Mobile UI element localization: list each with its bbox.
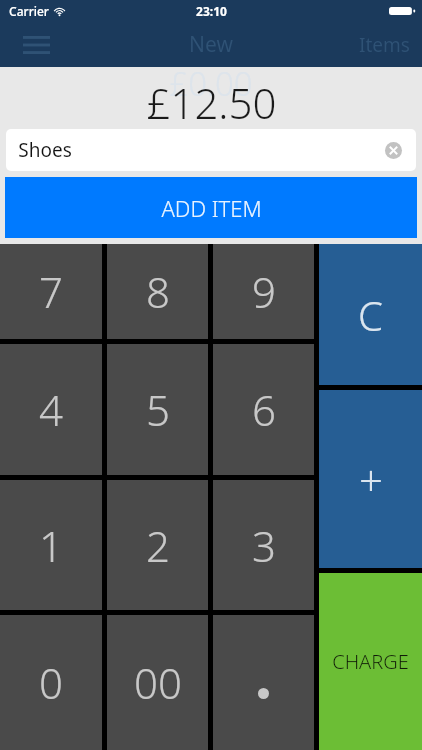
staticText: Carrier: [9, 3, 49, 19]
button[interactable]: 0: [0, 615, 102, 750]
staticText: £12.50: [146, 74, 277, 131]
button[interactable]: Items: [359, 32, 410, 58]
button[interactable]: 2: [107, 480, 208, 610]
button[interactable]: 6: [213, 344, 314, 475]
button[interactable]: 1: [0, 480, 102, 610]
staticText: 9: [252, 263, 276, 320]
button[interactable]: ADD ITEM: [5, 177, 417, 238]
button[interactable]: 00: [107, 615, 208, 750]
button[interactable]: 4: [0, 344, 102, 475]
button[interactable]: [213, 615, 314, 750]
staticText: 8: [146, 263, 170, 320]
staticText: 7: [39, 263, 63, 320]
staticText: New: [189, 30, 233, 59]
staticText: C: [358, 288, 383, 342]
button[interactable]: 8: [107, 244, 208, 339]
staticText: Shoes: [18, 137, 72, 163]
button[interactable]: Menu: [13, 25, 59, 65]
staticText: 4: [39, 381, 63, 438]
staticText: ADD ITEM: [161, 193, 262, 223]
button[interactable]: Shoes: [6, 129, 416, 171]
button[interactable]: New: [189, 30, 233, 59]
button[interactable]: +: [319, 390, 422, 568]
staticText: 2: [146, 517, 170, 574]
button[interactable]: CHARGE: [319, 573, 422, 750]
button[interactable]: 7: [0, 244, 102, 339]
staticText: 1: [39, 517, 63, 574]
staticText: 23:10: [196, 3, 227, 19]
staticText: 3: [252, 517, 276, 574]
staticText: £0.00: [169, 61, 253, 106]
staticText: Items: [359, 32, 410, 58]
button[interactable]: 9: [213, 244, 314, 339]
button[interactable]: 3: [213, 480, 314, 610]
button[interactable]: 5: [107, 344, 208, 475]
staticText: 00: [134, 654, 182, 711]
staticText: CHARGE: [332, 648, 409, 675]
button[interactable]: C: [319, 244, 422, 385]
staticText: 0: [39, 654, 63, 711]
staticText: 5: [146, 381, 170, 438]
button[interactable]: Clear text: [380, 137, 406, 163]
staticText: 6: [252, 381, 276, 438]
staticText: +: [359, 451, 383, 508]
